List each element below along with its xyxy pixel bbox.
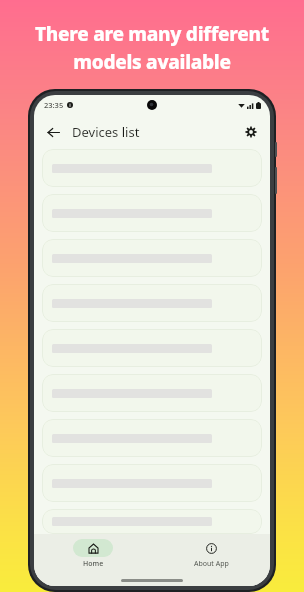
button[interactable] (42, 239, 262, 277)
button[interactable] (42, 509, 262, 534)
staticText: Home (83, 559, 104, 569)
button[interactable] (42, 149, 262, 187)
staticText: models available (73, 49, 231, 75)
button[interactable]: Settings (238, 119, 264, 145)
button[interactable] (42, 194, 262, 232)
button[interactable] (42, 329, 262, 367)
button[interactable] (42, 374, 262, 412)
button[interactable]: Back (40, 119, 66, 145)
button[interactable] (42, 284, 262, 322)
button[interactable] (42, 464, 262, 502)
staticText: 23:35 (44, 100, 64, 110)
button[interactable]: Home (34, 534, 152, 574)
staticText: Devices list (72, 123, 140, 141)
staticText: About App (194, 559, 229, 569)
staticText: There are many different (35, 21, 269, 47)
button[interactable]: About App (152, 534, 270, 574)
button[interactable] (42, 419, 262, 457)
